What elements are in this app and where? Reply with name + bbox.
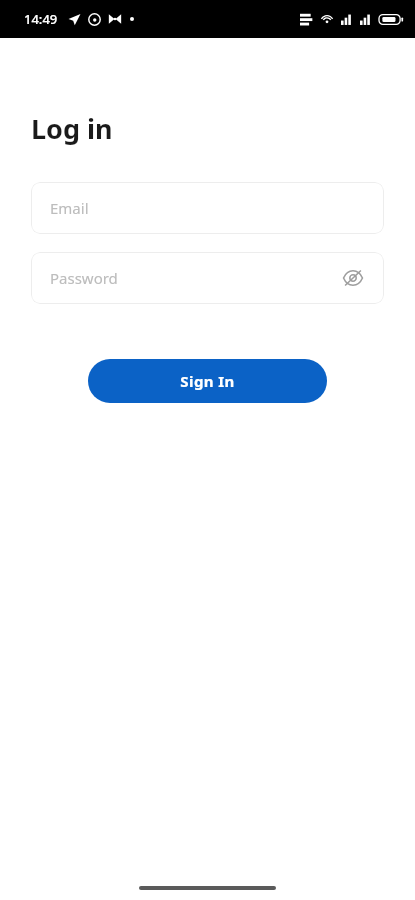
button[interactable]: Show password [336, 261, 370, 295]
button[interactable]: Email [31, 182, 384, 234]
staticText: 14:49 [24, 10, 58, 28]
staticText: Email [50, 198, 89, 218]
button[interactable]: Sign In [88, 359, 327, 403]
staticText: Password [50, 268, 118, 288]
button[interactable]: Password [31, 252, 384, 304]
staticText: Log in [31, 110, 113, 147]
staticText: Sign In [180, 371, 235, 391]
